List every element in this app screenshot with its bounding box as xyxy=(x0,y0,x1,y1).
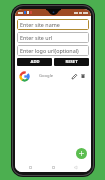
button[interactable]: Delete site xyxy=(79,72,87,80)
staticText: Enter site name xyxy=(20,21,60,28)
button[interactable]: ADD xyxy=(17,58,52,66)
staticText: RESET xyxy=(65,59,78,65)
staticText: ADD xyxy=(30,59,40,65)
staticText: Google xyxy=(39,73,54,79)
staticText: Enter site url xyxy=(20,34,53,41)
button[interactable]: Enter site url xyxy=(17,32,89,43)
button[interactable]: Edit site xyxy=(70,72,78,80)
button[interactable]: Home xyxy=(50,164,57,171)
button[interactable]: Recent apps xyxy=(27,164,34,171)
button[interactable]: Back xyxy=(72,164,79,171)
button[interactable]: Enter site name xyxy=(17,19,89,30)
button[interactable]: RESET xyxy=(54,58,89,66)
button[interactable]: Add site xyxy=(76,148,87,159)
button[interactable]: Google xyxy=(17,68,89,84)
button[interactable]: Enter logo url(optional) xyxy=(17,45,89,56)
staticText: Enter logo url(optional) xyxy=(20,47,79,54)
